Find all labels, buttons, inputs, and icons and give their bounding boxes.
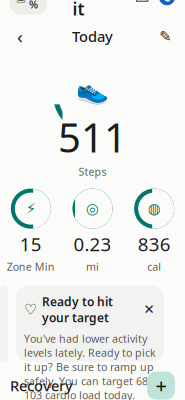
- staticText: ◎: [86, 200, 99, 217]
- button[interactable]: Profile: [159, 0, 175, 5]
- staticText: Ready to hit your target: [42, 294, 113, 325]
- staticText: ♡: [24, 301, 37, 318]
- staticText: 511: [58, 110, 127, 163]
- staticText: +: [155, 372, 166, 399]
- staticText: Steps: [78, 164, 106, 179]
- staticText: mi: [86, 259, 99, 274]
- staticText: 15: [20, 232, 42, 256]
- staticText: ✎: [159, 28, 171, 45]
- staticText: ⚡︎: [26, 200, 36, 217]
- staticText: 0.23: [73, 232, 111, 256]
- staticText: cal: [147, 259, 161, 274]
- staticText: ✕: [143, 302, 154, 317]
- button[interactable]: Add: [147, 372, 175, 400]
- staticText: fitbit: [72, 0, 107, 20]
- staticText: 836: [138, 232, 171, 256]
- staticText: ‹: [17, 24, 23, 49]
- staticText: Today: [72, 27, 113, 46]
- staticText: Recovery: [10, 376, 73, 395]
- staticText: 👟: [76, 75, 109, 106]
- staticText: C: [163, 0, 170, 4]
- staticText: Zone Min: [7, 259, 55, 274]
- staticText: ▣: [16, 0, 26, 3]
- staticText: ▭: [134, 0, 149, 6]
- button[interactable]: Edit: [155, 26, 175, 46]
- button[interactable]: Dismiss: [142, 302, 156, 316]
- button[interactable]: Messages: [133, 0, 151, 6]
- staticText: 82%: [29, 0, 41, 11]
- staticText: You've had lower activity levels lately.…: [24, 331, 156, 400]
- button[interactable]: Back: [10, 26, 30, 46]
- staticText: ◍: [148, 200, 161, 217]
- button[interactable]: Device battery 82 percent: [10, 0, 47, 14]
